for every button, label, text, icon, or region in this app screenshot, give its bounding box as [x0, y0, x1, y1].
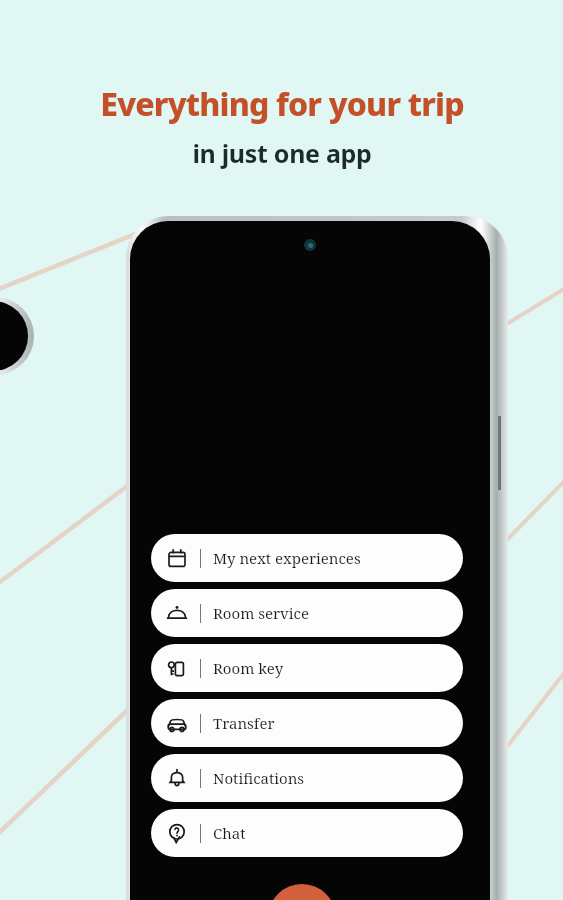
staticText: Notifications — [213, 768, 305, 788]
button[interactable]: Transfer — [151, 699, 463, 747]
staticText: Room service — [213, 603, 309, 623]
staticText: My next experiences — [213, 548, 361, 568]
staticText: Everything for your trip — [100, 82, 464, 126]
button[interactable]: Assistant — [268, 884, 336, 900]
staticText: Chat — [213, 823, 246, 843]
button[interactable]: Notifications — [151, 754, 463, 802]
staticText: Transfer — [213, 713, 275, 733]
staticText: Room key — [213, 658, 284, 678]
button[interactable]: My next experiences — [151, 534, 463, 582]
staticText: in just one app — [192, 136, 372, 170]
button[interactable]: Room service — [151, 589, 463, 637]
button[interactable]: Chat — [151, 809, 463, 857]
button[interactable]: Room key — [151, 644, 463, 692]
